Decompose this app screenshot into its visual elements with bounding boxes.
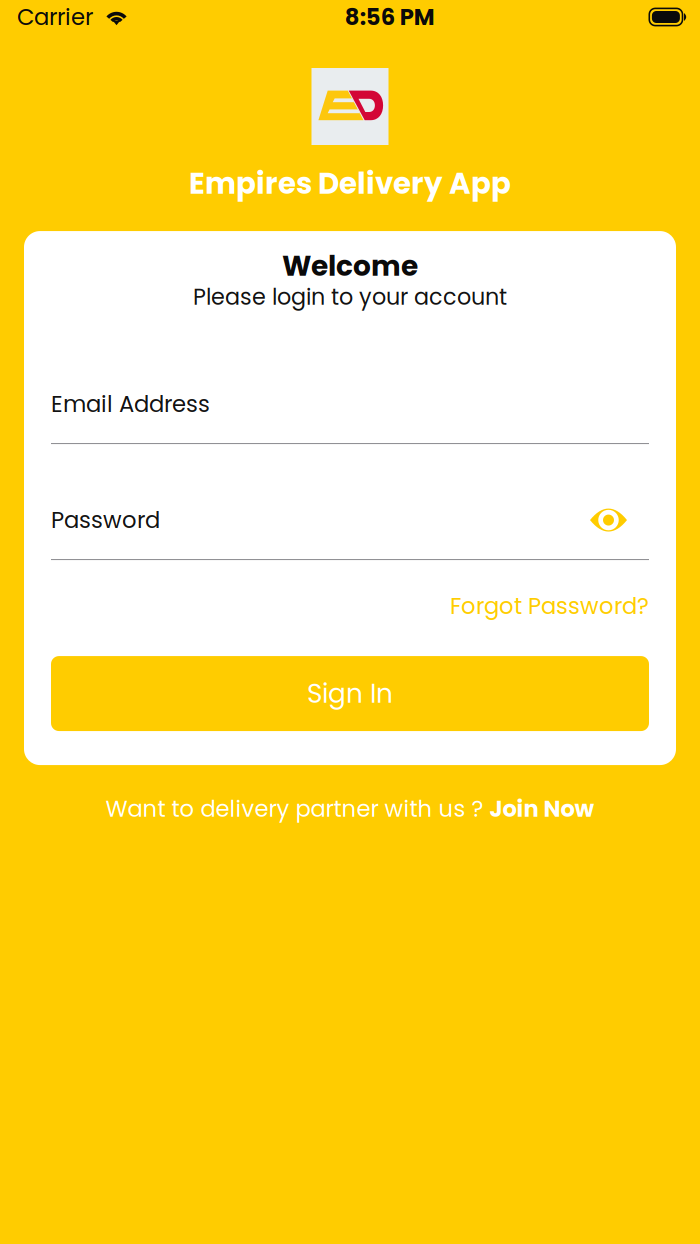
staticText: Please login to your account — [193, 281, 507, 313]
staticText: Sign In — [307, 675, 393, 712]
staticText: Password — [51, 504, 160, 536]
button[interactable]: Forgot Password? — [450, 594, 649, 618]
staticText: Email Address — [51, 388, 210, 420]
staticText: Carrier — [17, 1, 93, 33]
button[interactable]: Show password — [590, 505, 649, 535]
staticText: Welcome — [282, 246, 418, 286]
staticText: 8:56 PM — [345, 1, 435, 33]
staticText: Forgot Password? — [450, 590, 649, 622]
button[interactable]: Sign In — [51, 656, 649, 731]
staticText: Empires Delivery App — [189, 163, 511, 204]
button[interactable]: Join Now — [489, 793, 594, 825]
staticText: Join Now — [489, 793, 594, 825]
staticText: Want to delivery partner with us ? — [105, 793, 489, 825]
